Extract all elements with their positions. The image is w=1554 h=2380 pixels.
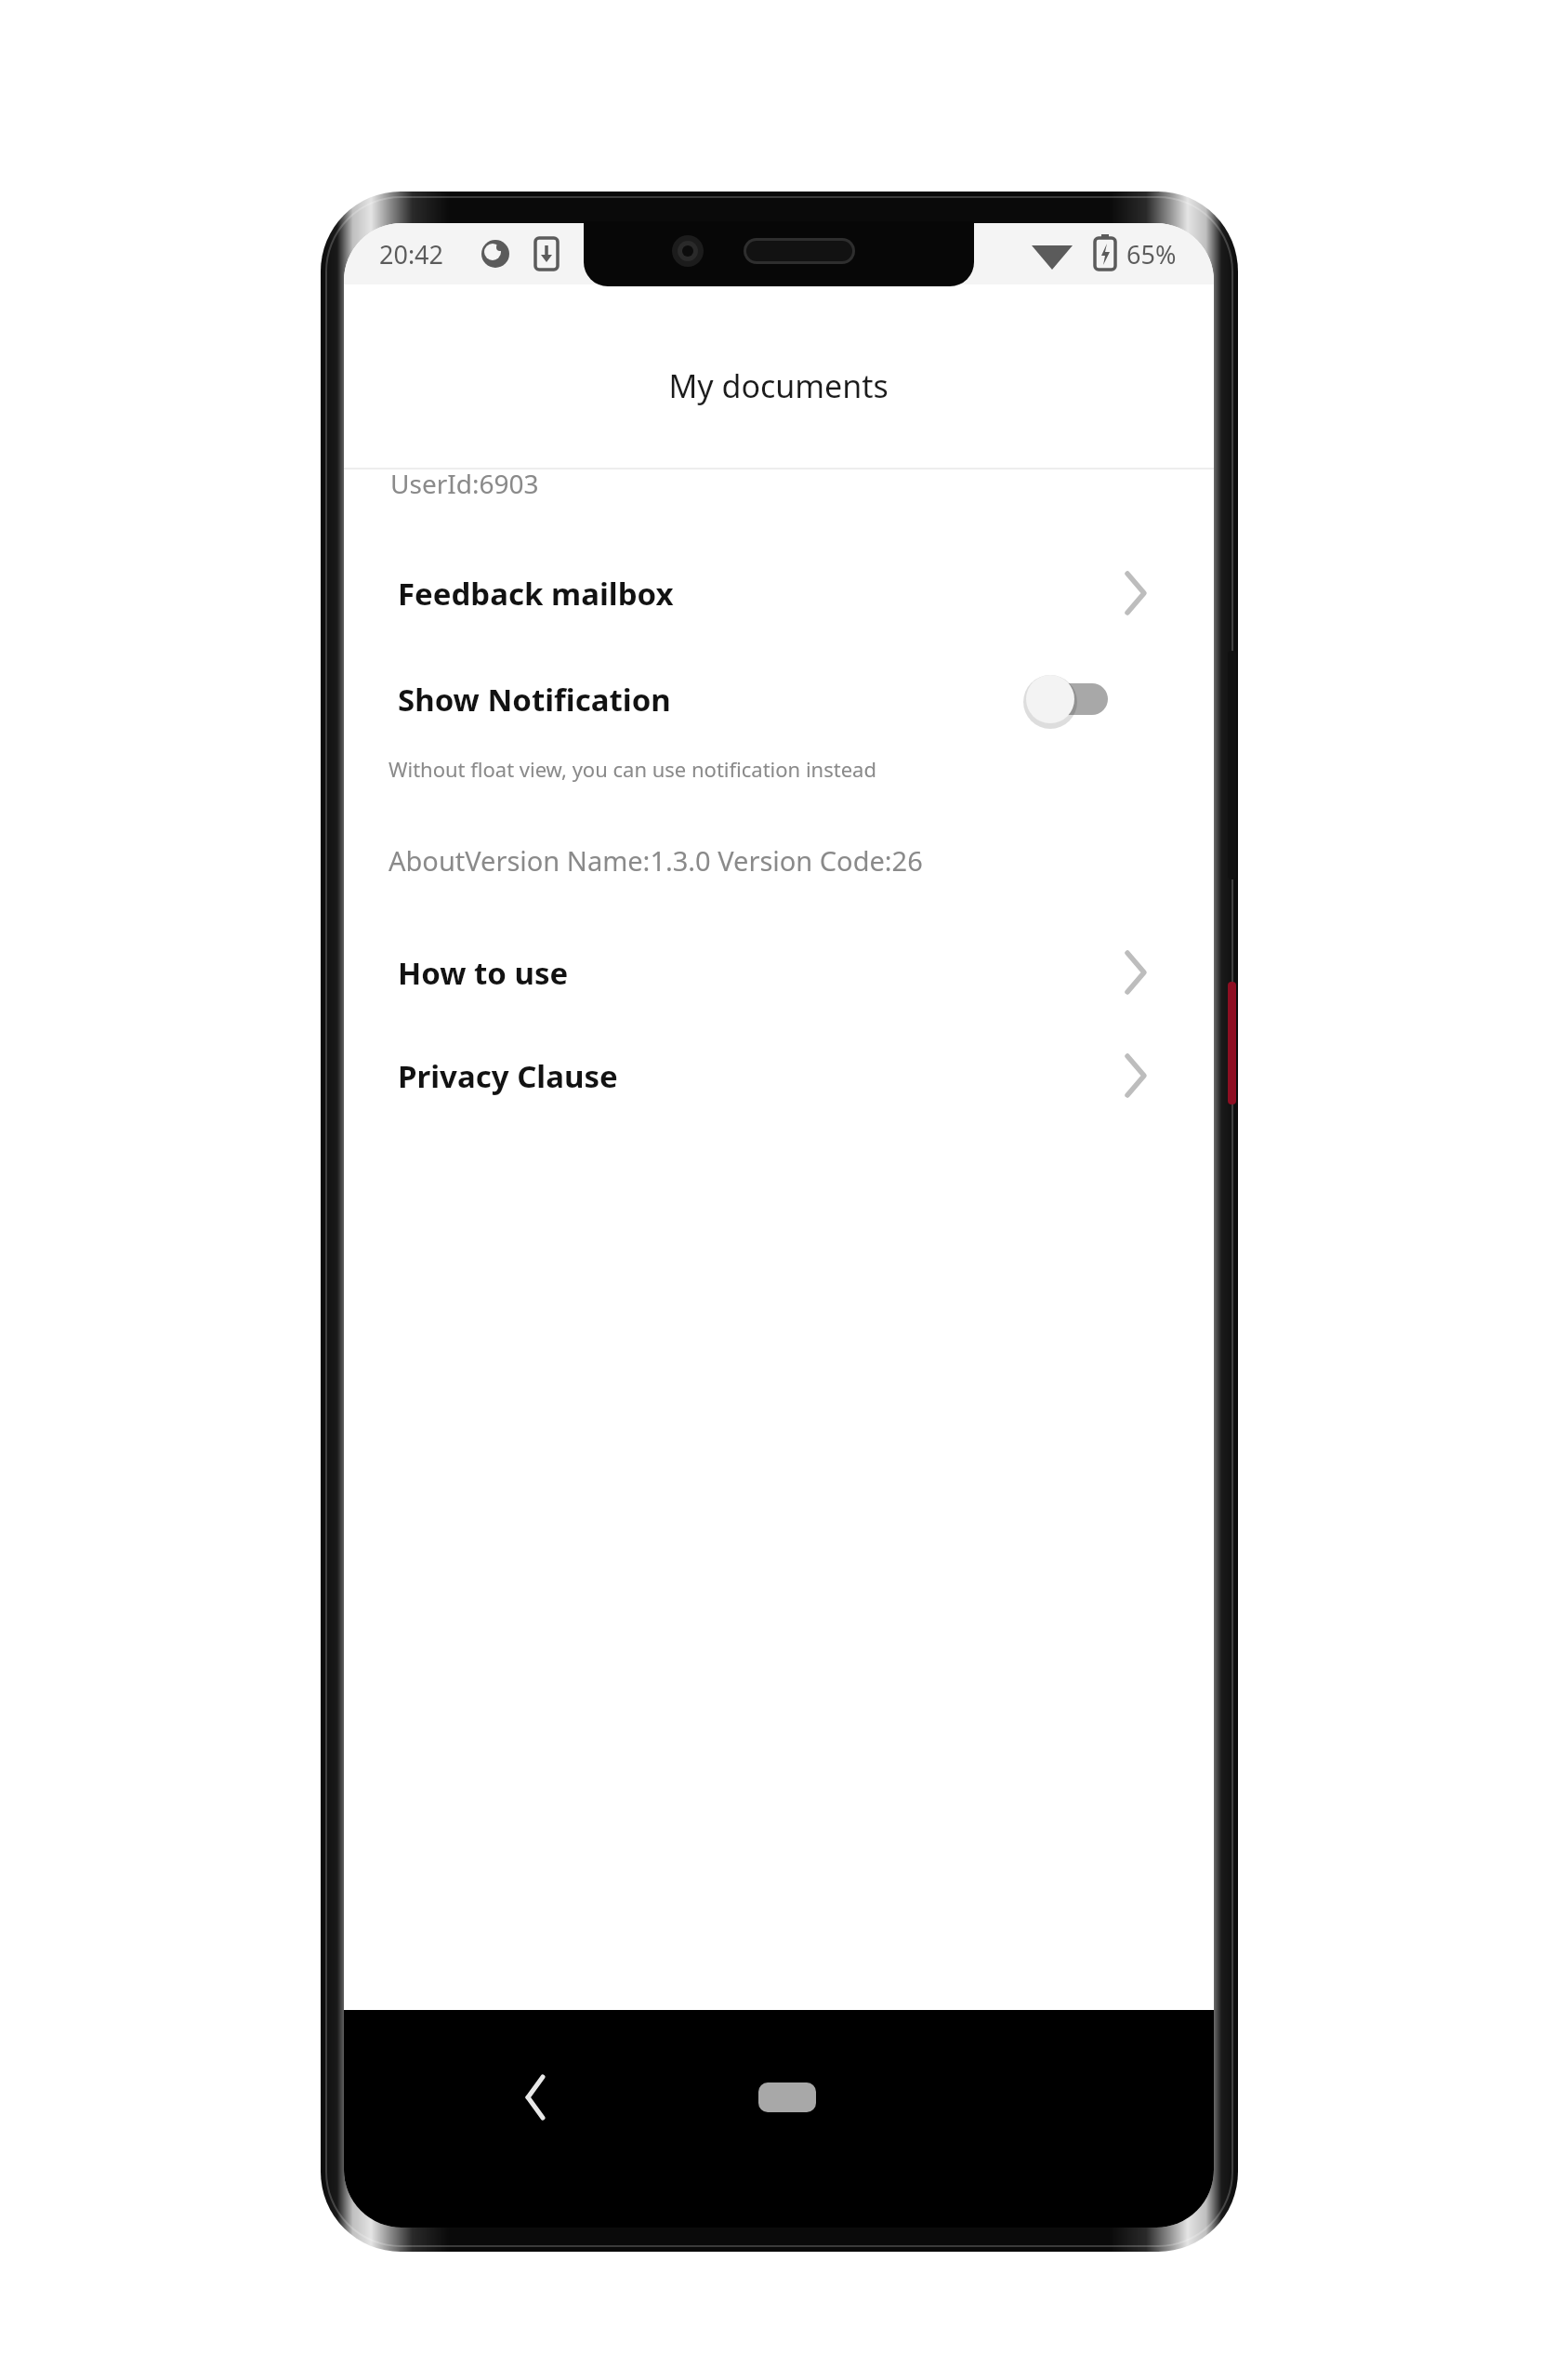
button[interactable]: Home — [758, 2082, 816, 2112]
button[interactable] — [344, 545, 1214, 641]
button[interactable] — [344, 1027, 1214, 1124]
button[interactable]: Show Notification toggle — [344, 651, 1214, 747]
button[interactable] — [344, 924, 1214, 1021]
